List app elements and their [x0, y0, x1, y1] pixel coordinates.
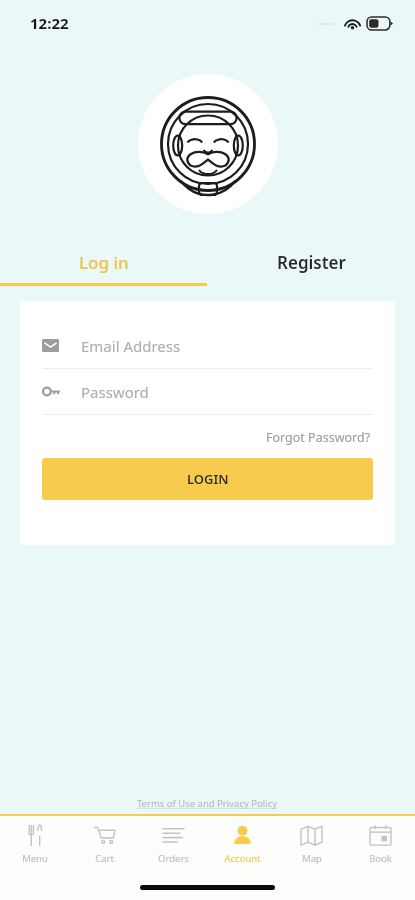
staticText: Email Address: [81, 336, 181, 356]
button[interactable]: Forgot Password?: [262, 425, 375, 450]
staticText: Cart: [95, 852, 114, 865]
button[interactable]: Cart: [70, 816, 139, 874]
button[interactable]: Email Address: [20, 323, 395, 368]
staticText: Account: [224, 852, 261, 865]
button[interactable]: Register: [207, 241, 415, 283]
button[interactable]: Menu: [0, 816, 70, 874]
staticText: 12:22: [30, 13, 69, 33]
staticText: Password: [81, 382, 149, 402]
staticText: Menu: [22, 852, 48, 865]
button[interactable]: LOGIN: [42, 458, 373, 500]
button[interactable]: Book: [346, 816, 415, 874]
staticText: Book: [369, 852, 392, 865]
staticText: LOGIN: [187, 470, 229, 488]
staticText: Map: [302, 852, 322, 865]
button[interactable]: Orders: [139, 816, 208, 874]
staticText: Register: [277, 251, 346, 274]
button[interactable]: Log in: [0, 241, 207, 283]
button[interactable]: Account: [208, 816, 277, 874]
button[interactable]: Terms of Use and Privacy Policy: [137, 797, 278, 810]
staticText: Log in: [79, 251, 129, 274]
staticText: Orders: [158, 852, 189, 865]
button[interactable]: Password: [20, 369, 395, 414]
button[interactable]: Map: [277, 816, 346, 874]
